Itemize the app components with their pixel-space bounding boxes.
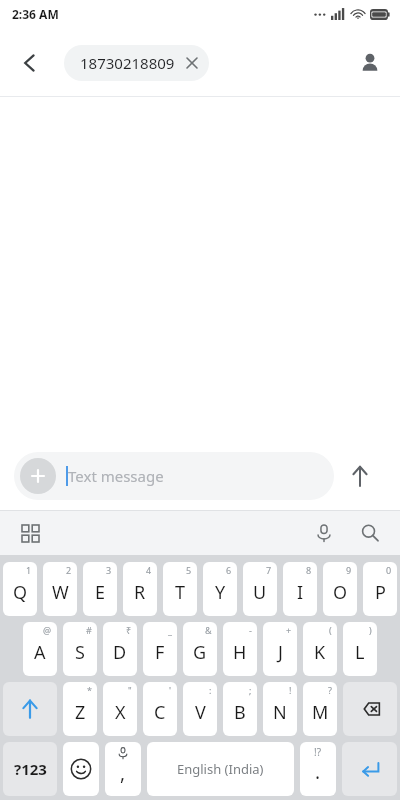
button[interactable]: ? xyxy=(303,682,337,736)
staticText: W xyxy=(52,580,69,605)
staticText: 4 xyxy=(146,564,152,576)
staticText: O xyxy=(333,580,348,605)
staticText: X xyxy=(115,700,126,725)
staticText: Text message xyxy=(68,466,164,486)
staticText: ! xyxy=(289,684,292,696)
staticText: V xyxy=(195,700,206,725)
staticText: E xyxy=(95,580,106,605)
staticText: 0 xyxy=(386,564,392,576)
button[interactable]: Enter xyxy=(342,742,397,796)
button[interactable]: : xyxy=(183,682,217,736)
staticText: 6 xyxy=(226,564,232,576)
staticText: S xyxy=(75,640,85,665)
button[interactable]: Emoji xyxy=(63,742,99,796)
button[interactable]: Symbols xyxy=(3,742,57,796)
button[interactable]: ; xyxy=(223,682,257,736)
staticText: 5 xyxy=(186,564,192,576)
button[interactable]: ) xyxy=(343,622,377,676)
button[interactable]: 18730218809 xyxy=(64,45,209,81)
staticText: 2 xyxy=(66,564,72,576)
button[interactable]: Back xyxy=(6,39,54,87)
staticText: ?123 xyxy=(14,759,47,779)
staticText: ? xyxy=(328,684,332,696)
staticText: 1 xyxy=(26,564,32,576)
staticText: 18730218809 xyxy=(80,53,175,73)
staticText: @ xyxy=(43,624,52,636)
staticText: ₹ xyxy=(126,624,132,636)
button[interactable]: 6 xyxy=(203,562,237,616)
button[interactable]: " xyxy=(103,682,137,736)
button[interactable]: + xyxy=(263,622,297,676)
button[interactable]: Voice input xyxy=(304,513,344,553)
staticText: Q xyxy=(13,580,28,605)
staticText: , xyxy=(120,760,126,786)
button[interactable]: @ xyxy=(23,622,57,676)
staticText: T xyxy=(175,580,186,605)
button[interactable]: 0 xyxy=(363,562,397,616)
staticText: ( xyxy=(329,624,332,636)
button[interactable]: Send xyxy=(334,450,386,502)
staticText: U xyxy=(253,580,267,605)
button[interactable]: Period xyxy=(300,742,336,796)
staticText: ; xyxy=(249,684,252,696)
staticText: & xyxy=(205,624,212,636)
button[interactable]: Contact xyxy=(346,39,394,87)
staticText: " xyxy=(128,684,132,696)
staticText: _ xyxy=(168,624,172,636)
staticText: 2:36 AM xyxy=(12,6,59,22)
staticText: H xyxy=(233,640,247,665)
staticText: 8 xyxy=(306,564,312,576)
staticText: L xyxy=(355,640,365,665)
staticText: Y xyxy=(215,580,226,605)
staticText: N xyxy=(273,700,287,725)
button[interactable]: Attach xyxy=(14,452,334,500)
staticText: * xyxy=(87,684,92,696)
button[interactable]: * xyxy=(63,682,97,736)
staticText: ) xyxy=(369,624,372,636)
button[interactable]: Comma xyxy=(105,742,141,796)
staticText: 9 xyxy=(346,564,352,576)
button[interactable]: Backspace xyxy=(343,682,397,736)
staticText: - xyxy=(249,624,252,636)
staticText: G xyxy=(193,640,207,665)
button[interactable]: 4 xyxy=(123,562,157,616)
button[interactable]: ' xyxy=(143,682,177,736)
button[interactable]: Space xyxy=(147,742,294,796)
button[interactable]: 3 xyxy=(83,562,117,616)
button[interactable]: ( xyxy=(303,622,337,676)
staticText: D xyxy=(113,640,127,665)
staticText: J xyxy=(278,640,283,665)
staticText: Z xyxy=(75,700,86,725)
button[interactable]: 7 xyxy=(243,562,277,616)
button[interactable]: Attach xyxy=(20,458,56,494)
staticText: P xyxy=(375,580,386,605)
button[interactable]: _ xyxy=(143,622,177,676)
staticText: !? xyxy=(314,745,322,759)
staticText: I xyxy=(297,580,304,605)
button[interactable]: Search xyxy=(350,513,390,553)
button[interactable]: 1 xyxy=(3,562,37,616)
staticText: + xyxy=(286,624,292,636)
staticText: ' xyxy=(169,684,172,696)
button[interactable]: ! xyxy=(263,682,297,736)
button[interactable]: 2 xyxy=(43,562,77,616)
staticText: K xyxy=(314,640,326,665)
button[interactable]: # xyxy=(63,622,97,676)
staticText: . xyxy=(315,759,321,785)
staticText: # xyxy=(86,624,92,636)
button[interactable]: 8 xyxy=(283,562,317,616)
button[interactable]: - xyxy=(223,622,257,676)
staticText: 3 xyxy=(106,564,112,576)
staticText: F xyxy=(155,640,165,665)
button[interactable]: ₹ xyxy=(103,622,137,676)
staticText: R xyxy=(134,580,146,605)
staticText: M xyxy=(312,700,329,725)
button[interactable]: Shift xyxy=(3,682,57,736)
staticText: English (India) xyxy=(177,760,264,778)
button[interactable]: Keyboard options xyxy=(10,513,50,553)
staticText: C xyxy=(154,700,166,725)
staticText: : xyxy=(209,684,212,696)
button[interactable]: & xyxy=(183,622,217,676)
button[interactable]: 5 xyxy=(163,562,197,616)
button[interactable]: 9 xyxy=(323,562,357,616)
